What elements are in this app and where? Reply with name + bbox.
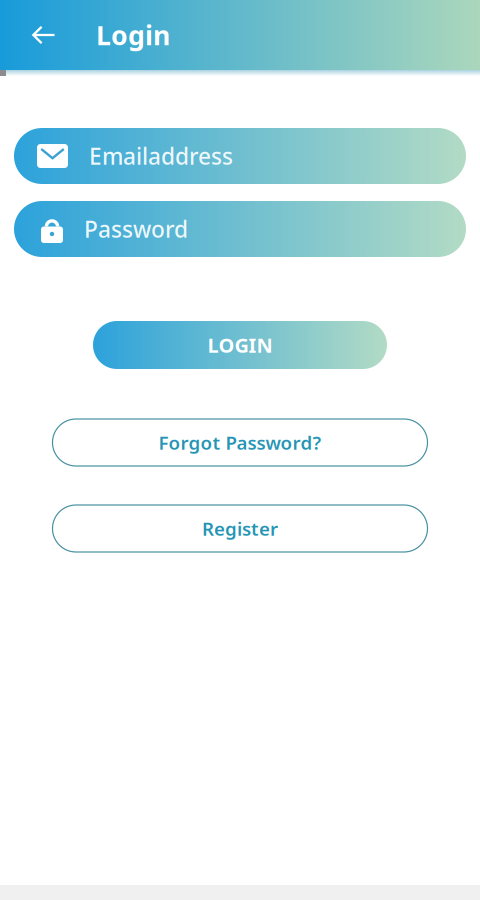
button[interactable]: Back (0, 0, 72, 70)
button[interactable]: Emailaddress (14, 128, 466, 184)
staticText: Password (84, 214, 188, 244)
button[interactable]: Register (52, 505, 427, 552)
staticText: Login (96, 17, 170, 53)
staticText: Emailaddress (89, 141, 233, 171)
staticText: LOGIN (207, 332, 272, 358)
button[interactable]: Forgot Password? (52, 419, 427, 466)
button[interactable]: Password (14, 201, 466, 257)
button[interactable]: LOGIN (93, 321, 387, 369)
staticText: Forgot Password? (158, 430, 321, 455)
staticText: Register (202, 516, 278, 541)
